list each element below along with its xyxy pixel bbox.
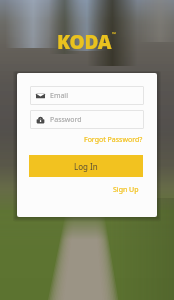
staticText: KODA: [57, 29, 112, 55]
staticText: ™: [112, 31, 116, 38]
button[interactable]: Forgot Password?: [79, 135, 143, 145]
button[interactable]: Log In: [29, 155, 143, 177]
staticText: Forgot Password?: [84, 135, 143, 145]
button[interactable]: Sign Up: [98, 185, 139, 195]
button[interactable]: Email: [30, 86, 144, 105]
staticText: Log In: [74, 161, 98, 172]
staticText: Password: [50, 115, 82, 125]
staticText: Sign Up: [113, 185, 139, 195]
button[interactable]: Password: [30, 110, 144, 129]
staticText: Email: [50, 91, 68, 101]
